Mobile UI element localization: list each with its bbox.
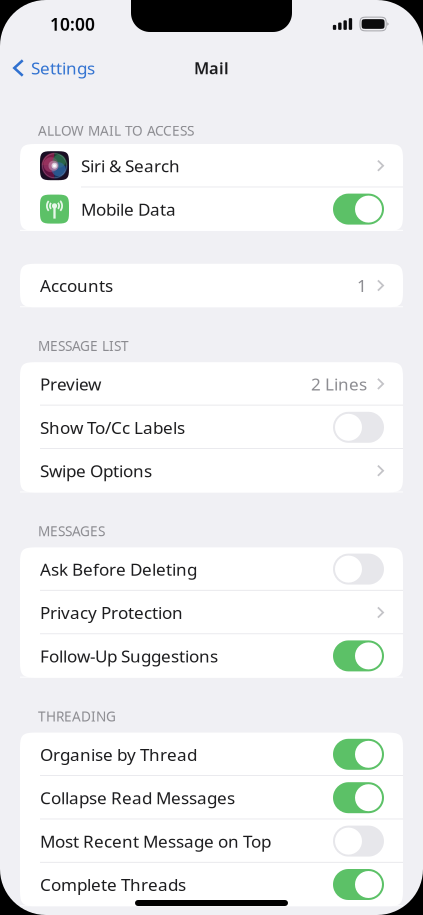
button[interactable]: Settings bbox=[0, 48, 105, 88]
staticText: 1 bbox=[357, 274, 367, 297]
button[interactable]: Siri & Search bbox=[20, 144, 403, 187]
button[interactable]: Follow-Up Suggestions bbox=[20, 634, 403, 678]
staticText: 10:00 bbox=[50, 12, 95, 35]
staticText: Mail bbox=[194, 57, 229, 79]
button[interactable]: Privacy Protection bbox=[20, 591, 403, 634]
staticText: Accounts bbox=[40, 274, 113, 297]
staticText: Mobile Data bbox=[81, 198, 176, 220]
staticText: THREADING bbox=[38, 707, 116, 725]
button[interactable]: Preview bbox=[20, 362, 403, 406]
button[interactable]: Show To/Cc Labels bbox=[20, 406, 403, 449]
button[interactable]: Complete Threads bbox=[20, 863, 403, 906]
button[interactable]: Accounts bbox=[20, 264, 403, 307]
staticText: Privacy Protection bbox=[40, 601, 183, 624]
staticText: Collapse Read Messages bbox=[40, 786, 235, 809]
staticText: Follow-Up Suggestions bbox=[40, 645, 218, 667]
staticText: Show To/Cc Labels bbox=[40, 416, 185, 439]
staticText: Siri & Search bbox=[81, 154, 180, 177]
staticText: Most Recent Message on Top bbox=[40, 830, 271, 852]
button[interactable]: Organise by Thread bbox=[20, 733, 403, 776]
staticText: Settings bbox=[31, 57, 95, 79]
button[interactable]: Collapse Read Messages bbox=[20, 776, 403, 819]
staticText: Ask Before Deleting bbox=[40, 558, 197, 580]
staticText: Organise by Thread bbox=[40, 743, 197, 766]
staticText: Complete Threads bbox=[40, 873, 186, 896]
staticText: Swipe Options bbox=[40, 459, 152, 482]
staticText: 2 Lines bbox=[311, 373, 367, 395]
staticText: Preview bbox=[40, 373, 101, 395]
staticText: MESSAGES bbox=[38, 522, 105, 540]
button[interactable]: Swipe Options bbox=[20, 449, 403, 492]
staticText: MESSAGE LIST bbox=[38, 337, 129, 355]
staticText: ALLOW MAIL TO ACCESS bbox=[38, 121, 194, 140]
button[interactable]: Most Recent Message on Top bbox=[20, 819, 403, 863]
button[interactable]: Ask Before Deleting bbox=[20, 547, 403, 591]
button[interactable]: Mobile Data bbox=[20, 187, 403, 231]
